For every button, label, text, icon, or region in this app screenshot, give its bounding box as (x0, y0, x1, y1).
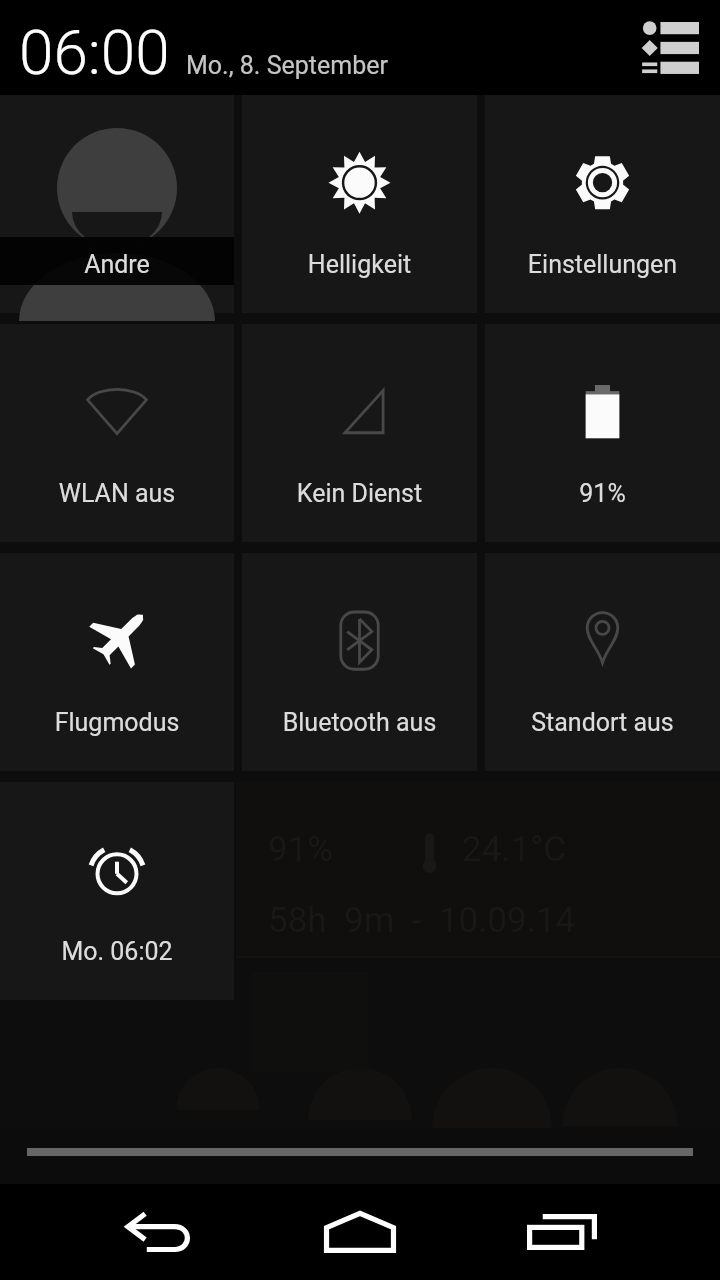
staticText: Bluetooth aus (242, 708, 477, 737)
button[interactable]: Quick settings (630, 8, 710, 88)
staticText: Kein Dienst (242, 479, 477, 508)
button[interactable]: Bluetooth aus (242, 553, 477, 771)
staticText: WLAN aus (0, 479, 234, 508)
button[interactable]: Drag handle (0, 1148, 720, 1156)
staticText: 24.1°C (462, 829, 567, 870)
staticText: 91% (485, 479, 720, 508)
button[interactable]: Recent apps (482, 1184, 642, 1280)
staticText: Flugmodus (0, 708, 234, 737)
button[interactable]: Einstellungen (485, 95, 720, 313)
staticText: Mo., 8. September (186, 51, 388, 80)
button[interactable]: Mo. 06:02 (0, 782, 234, 1000)
staticText: 06:00 (19, 16, 170, 89)
button[interactable]: Andre (0, 95, 234, 313)
staticText: 58h 9m - 10.09.14 (268, 900, 576, 941)
staticText: 91% (268, 829, 333, 870)
button[interactable]: WLAN aus (0, 324, 234, 542)
staticText: Helligkeit (242, 250, 477, 279)
button[interactable]: Helligkeit (242, 95, 477, 313)
staticText: Mo. 06:02 (0, 937, 234, 966)
button[interactable]: Standort aus (485, 553, 720, 771)
button[interactable]: 91% (485, 324, 720, 542)
staticText: Standort aus (485, 708, 720, 737)
button[interactable]: Home (280, 1184, 440, 1280)
staticText: Einstellungen (485, 250, 720, 279)
button[interactable]: Back (80, 1184, 240, 1280)
button[interactable]: Kein Dienst (242, 324, 477, 542)
staticText: Andre (0, 250, 234, 279)
button[interactable]: Flugmodus (0, 553, 234, 771)
